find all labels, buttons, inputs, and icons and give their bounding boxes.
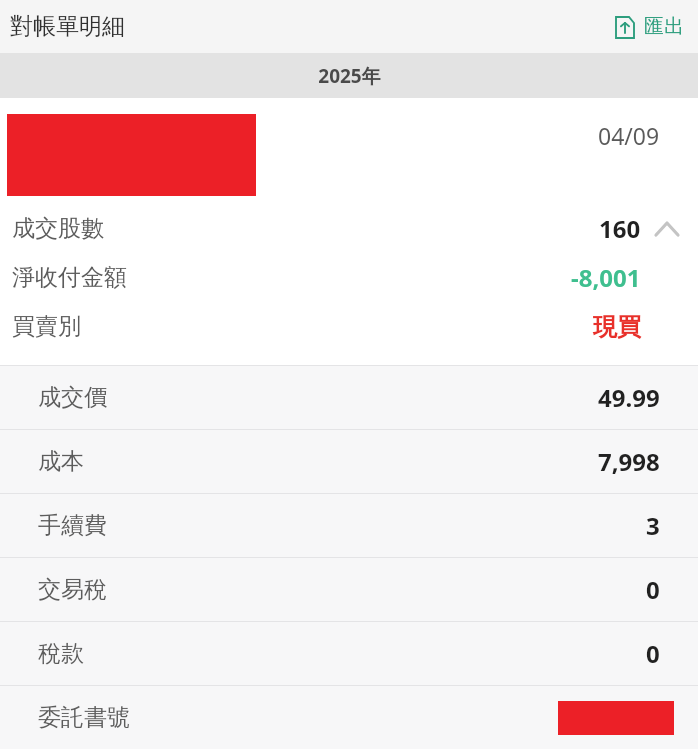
staticText: 委託書號	[38, 703, 130, 732]
staticText: 淨收付金額	[12, 263, 127, 292]
staticText: 稅款	[38, 639, 84, 668]
staticText: 手續費	[38, 511, 107, 540]
staticText: 現買	[593, 312, 641, 342]
other: Collapse	[648, 210, 686, 248]
staticText: 買賣別	[12, 312, 81, 341]
staticText: 成本	[38, 447, 84, 476]
staticText: 3	[646, 509, 660, 542]
staticText: 04/09	[598, 120, 660, 151]
button[interactable]: 成本	[0, 430, 698, 493]
button[interactable]: 淨收付金額	[0, 253, 698, 302]
button[interactable]: 2025年	[0, 53, 698, 98]
staticText: 7,998	[598, 445, 660, 478]
staticText: 匯出	[644, 14, 684, 39]
button[interactable]: 交易稅	[0, 558, 698, 621]
button[interactable]: 成交股數	[0, 204, 698, 253]
button[interactable]: 稅款	[0, 622, 698, 685]
button[interactable]: 買賣別	[0, 302, 698, 351]
staticText: 交易稅	[38, 575, 107, 604]
staticText: 49.99	[598, 381, 660, 414]
button[interactable]: 匯出	[611, 10, 686, 43]
staticText: 對帳單明細	[10, 12, 125, 41]
button[interactable]: 委託書號	[0, 686, 698, 749]
staticText: 成交價	[38, 383, 107, 412]
button[interactable]: 手續費	[0, 494, 698, 557]
staticText: 160	[599, 212, 641, 245]
staticText: 成交股數	[12, 214, 104, 243]
staticText: 0	[646, 573, 660, 606]
button[interactable]: 成交價	[0, 366, 698, 429]
staticText: 0	[646, 637, 660, 670]
staticText: -8,001	[571, 261, 641, 294]
staticText: 2025年	[318, 63, 381, 89]
